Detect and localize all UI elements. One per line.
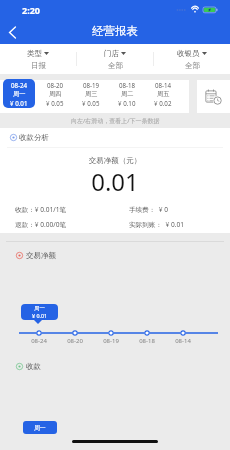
staticText: 经营报表 <box>92 24 138 38</box>
staticText: ¥ 0.05 <box>46 99 64 107</box>
staticText: 08-18 <box>134 337 160 345</box>
staticText: 向左/右滑动，查看上/下一条数据 <box>71 117 160 125</box>
staticText: 收款分析 <box>19 133 49 142</box>
staticText: ¥ 0.10 <box>118 99 136 107</box>
button[interactable]: Back <box>0 20 24 44</box>
staticText: 退款：¥ 0.00/0笔 <box>15 220 129 229</box>
staticText: 2:20 <box>22 4 40 16</box>
staticText: 08-19 <box>98 337 124 345</box>
staticText: ¥ 0.01 <box>32 312 48 319</box>
staticText: 门店 <box>104 49 119 58</box>
button[interactable]: 08-20 <box>39 79 71 108</box>
staticText: 交易净额（元） <box>0 156 230 165</box>
staticText: ¥ 0.05 <box>82 99 100 107</box>
staticText: 周一 <box>13 90 26 98</box>
button[interactable]: 08-18 <box>111 79 143 108</box>
button[interactable]: 门店 <box>77 49 153 70</box>
staticText: 类型 <box>27 49 42 58</box>
button[interactable]: 08-24 <box>3 79 35 108</box>
staticText: 周五 <box>157 90 170 98</box>
staticText: 收款 <box>26 362 41 371</box>
staticText: 08-19 <box>83 81 100 89</box>
button[interactable]: 08-14 <box>147 79 179 108</box>
staticText: 08-24 <box>26 337 52 345</box>
staticText: ¥ 0.02 <box>154 99 172 107</box>
staticText: 周二 <box>121 90 134 98</box>
staticText: 周四 <box>49 90 62 98</box>
button[interactable]: History <box>197 80 230 113</box>
staticText: 08-18 <box>119 81 136 89</box>
staticText: 实际到账： ¥ 0.01 <box>129 220 184 229</box>
button[interactable]: 08-19 <box>75 79 107 108</box>
staticText: 全部 <box>108 61 123 70</box>
staticText: 收银员 <box>177 49 200 58</box>
staticText: 08-20 <box>62 337 88 345</box>
staticText: 08-14 <box>155 81 172 89</box>
staticText: ¥ 0.01 <box>10 99 28 107</box>
button[interactable]: 类型 <box>0 49 76 70</box>
button[interactable]: 收银员 <box>154 49 230 70</box>
staticText: 全部 <box>185 61 200 70</box>
staticText: 日报 <box>31 61 46 70</box>
staticText: 周三 <box>85 90 98 98</box>
staticText: 0.01 <box>0 165 230 198</box>
staticText: 收款：¥ 0.01/1笔 <box>15 205 129 214</box>
staticText: 交易净额 <box>26 251 56 260</box>
staticText: 08-24 <box>11 81 28 89</box>
staticText: 周一 <box>34 424 46 431</box>
staticText: 手续费： ¥ 0 <box>129 205 169 214</box>
staticText: 周一 <box>34 305 45 312</box>
staticText: 08-20 <box>47 81 64 89</box>
staticText: 08-14 <box>170 337 196 345</box>
